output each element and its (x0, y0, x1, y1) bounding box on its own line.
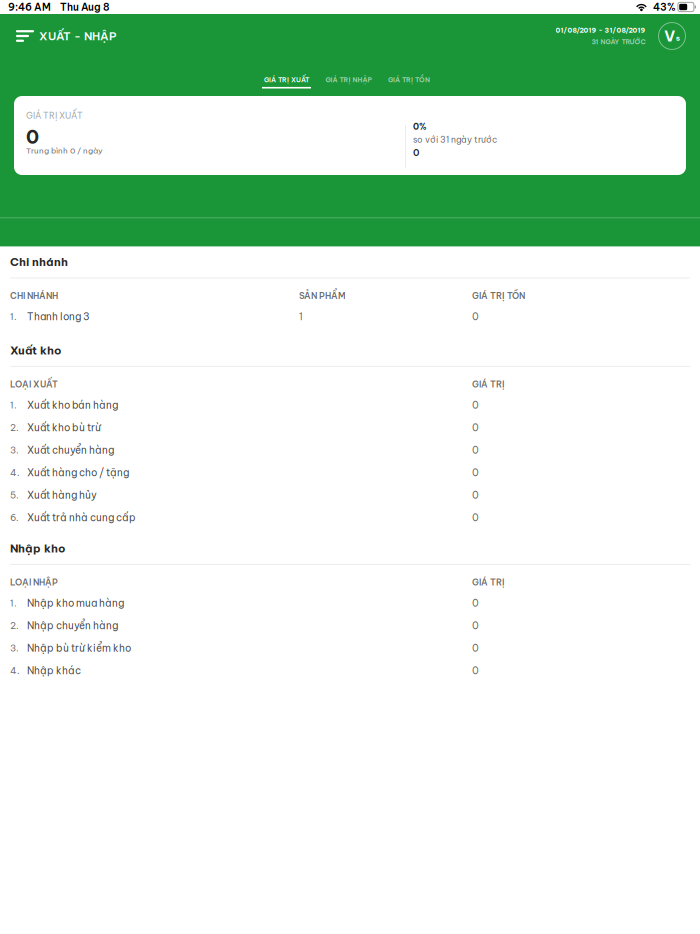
staticText: 0 (472, 399, 479, 411)
staticText: 9:46 AM (8, 1, 51, 13)
staticText: Xuất kho bán hàng (27, 399, 118, 411)
button[interactable]: Menu (0, 14, 39, 58)
button[interactable]: 1. (0, 394, 700, 416)
staticText: 43% (653, 1, 676, 13)
staticText: Thu Aug 8 (60, 1, 110, 13)
staticText: 3. (10, 444, 19, 456)
staticText: Xuất kho (10, 343, 61, 357)
button[interactable]: 01/08/2019 - 31/08/2019 (555, 17, 645, 55)
staticText: 1. (10, 311, 17, 322)
staticText: 4. (10, 665, 20, 676)
staticText: GIÁ TRỊ XUẤT (264, 75, 309, 84)
button[interactable]: 2. (0, 614, 700, 637)
staticText: 0 (472, 664, 479, 677)
staticText: Xuất trả nhà cung cấp (27, 511, 136, 524)
button[interactable]: XUẤT - NHẬP (39, 15, 127, 57)
staticText: Nhập kho mua hàng (27, 597, 124, 609)
staticText: Nhập khác (27, 664, 81, 677)
staticText: GIÁ TRỊ (472, 577, 505, 588)
staticText: 0 (472, 619, 479, 632)
staticText: 0 (472, 642, 479, 654)
button[interactable]: User account (658, 22, 685, 49)
staticText: GIÁ TRỊ TỒN (388, 75, 430, 84)
button[interactable]: 2. (0, 416, 700, 439)
staticText: 1 (299, 310, 303, 323)
button[interactable]: GIÁ TRỊ NHẬP (324, 59, 373, 91)
staticText: LOẠI NHẬP (10, 577, 58, 588)
staticText: 2. (10, 422, 19, 433)
staticText: so với 31 ngày trước (413, 134, 497, 145)
staticText: V (664, 27, 675, 45)
staticText: 1. (10, 597, 17, 609)
button[interactable]: 3. (0, 439, 700, 461)
staticText: 2. (10, 620, 19, 631)
staticText: LOẠI XUẤT (10, 379, 58, 390)
staticText: 3. (10, 642, 19, 654)
button[interactable]: GIÁ TRỊ TỒN (386, 59, 432, 91)
button[interactable]: 4. (0, 461, 700, 484)
staticText: 0 (472, 421, 479, 434)
staticText: 4. (10, 467, 20, 478)
staticText: Chi nhánh (10, 255, 68, 269)
staticText: 6. (10, 512, 19, 523)
staticText: Nhập kho (10, 541, 65, 555)
staticText: SẢN PHẨM (299, 290, 346, 301)
staticText: Xuất hàng hủy (27, 489, 97, 501)
staticText: 01/08/2019 - 31/08/2019 (555, 26, 645, 34)
staticText: Xuất kho bù trừ (27, 421, 101, 434)
button[interactable]: 3. (0, 637, 700, 659)
button[interactable]: 1. (0, 592, 700, 614)
staticText: GIÁ TRỊ NHẬP (325, 75, 371, 84)
staticText: 0 (413, 147, 419, 158)
staticText: Xuất hàng cho / tặng (27, 466, 129, 479)
staticText: Thanh long 3 (27, 310, 90, 323)
button[interactable]: 1. (0, 305, 700, 328)
staticText: CHI NHÁNH (10, 290, 58, 301)
button[interactable]: 4. (0, 659, 700, 682)
staticText: Nhập bù trừ kiểm kho (27, 642, 131, 654)
staticText: Xuất chuyển hàng (27, 444, 114, 456)
staticText: 31 NGÀY TRƯỚC (591, 37, 645, 46)
staticText: XUẤT - NHẬP (39, 29, 117, 43)
staticText: s (676, 33, 680, 43)
staticText: 0% (413, 121, 427, 132)
staticText: 0 (472, 489, 479, 501)
button[interactable]: GIÁ TRỊ XUẤT (262, 59, 311, 91)
button[interactable]: 5. (0, 484, 700, 506)
staticText: Nhập chuyển hàng (27, 619, 118, 632)
staticText: GIÁ TRỊ XUẤT (26, 110, 83, 121)
staticText: 0 (472, 466, 479, 479)
staticText: GIÁ TRỊ (472, 379, 505, 390)
staticText: 0 (472, 444, 479, 456)
button[interactable]: 6. (0, 506, 700, 529)
staticText: 5. (10, 489, 19, 501)
staticText: 0 (472, 310, 479, 323)
staticText: GIÁ TRỊ TỒN (472, 290, 525, 301)
staticText: 0 (472, 597, 479, 609)
staticText: 0 (472, 511, 479, 524)
staticText: 1. (10, 399, 17, 411)
staticText: Trung bình 0 / ngày (26, 145, 103, 155)
staticText: 0 (26, 125, 39, 149)
